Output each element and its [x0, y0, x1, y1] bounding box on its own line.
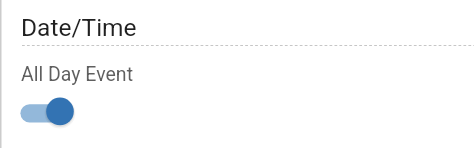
staticText: All Day Event [21, 63, 134, 86]
staticText: Date/Time [21, 13, 137, 42]
button[interactable]: All Day Event, on [14, 92, 84, 134]
button[interactable]: All Day Event [0, 54, 474, 138]
